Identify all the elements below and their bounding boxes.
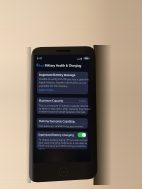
button[interactable] [0, 0, 142, 189]
